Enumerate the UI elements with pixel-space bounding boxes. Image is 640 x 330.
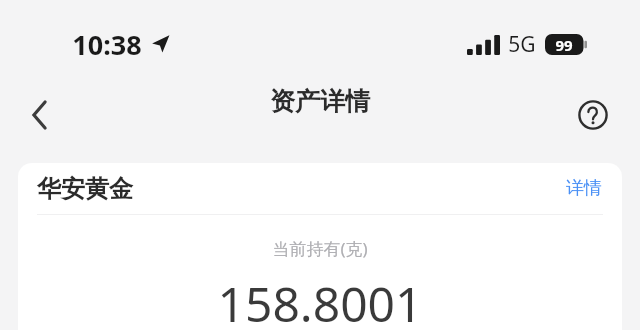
staticText: 10:38 — [72, 26, 142, 63]
staticText: 华安黄金 — [37, 174, 133, 204]
staticText: 99 — [555, 35, 573, 55]
staticText: 5G — [508, 30, 536, 59]
button[interactable]: Help — [571, 93, 615, 137]
staticText: 当前持有(克) — [272, 237, 368, 260]
button[interactable]: Back — [16, 92, 62, 138]
button[interactable]: 详情 — [564, 171, 604, 206]
staticText: 资产详情 — [270, 86, 370, 117]
staticText: 详情 — [566, 177, 602, 200]
staticText: 158.8001 — [217, 271, 423, 330]
